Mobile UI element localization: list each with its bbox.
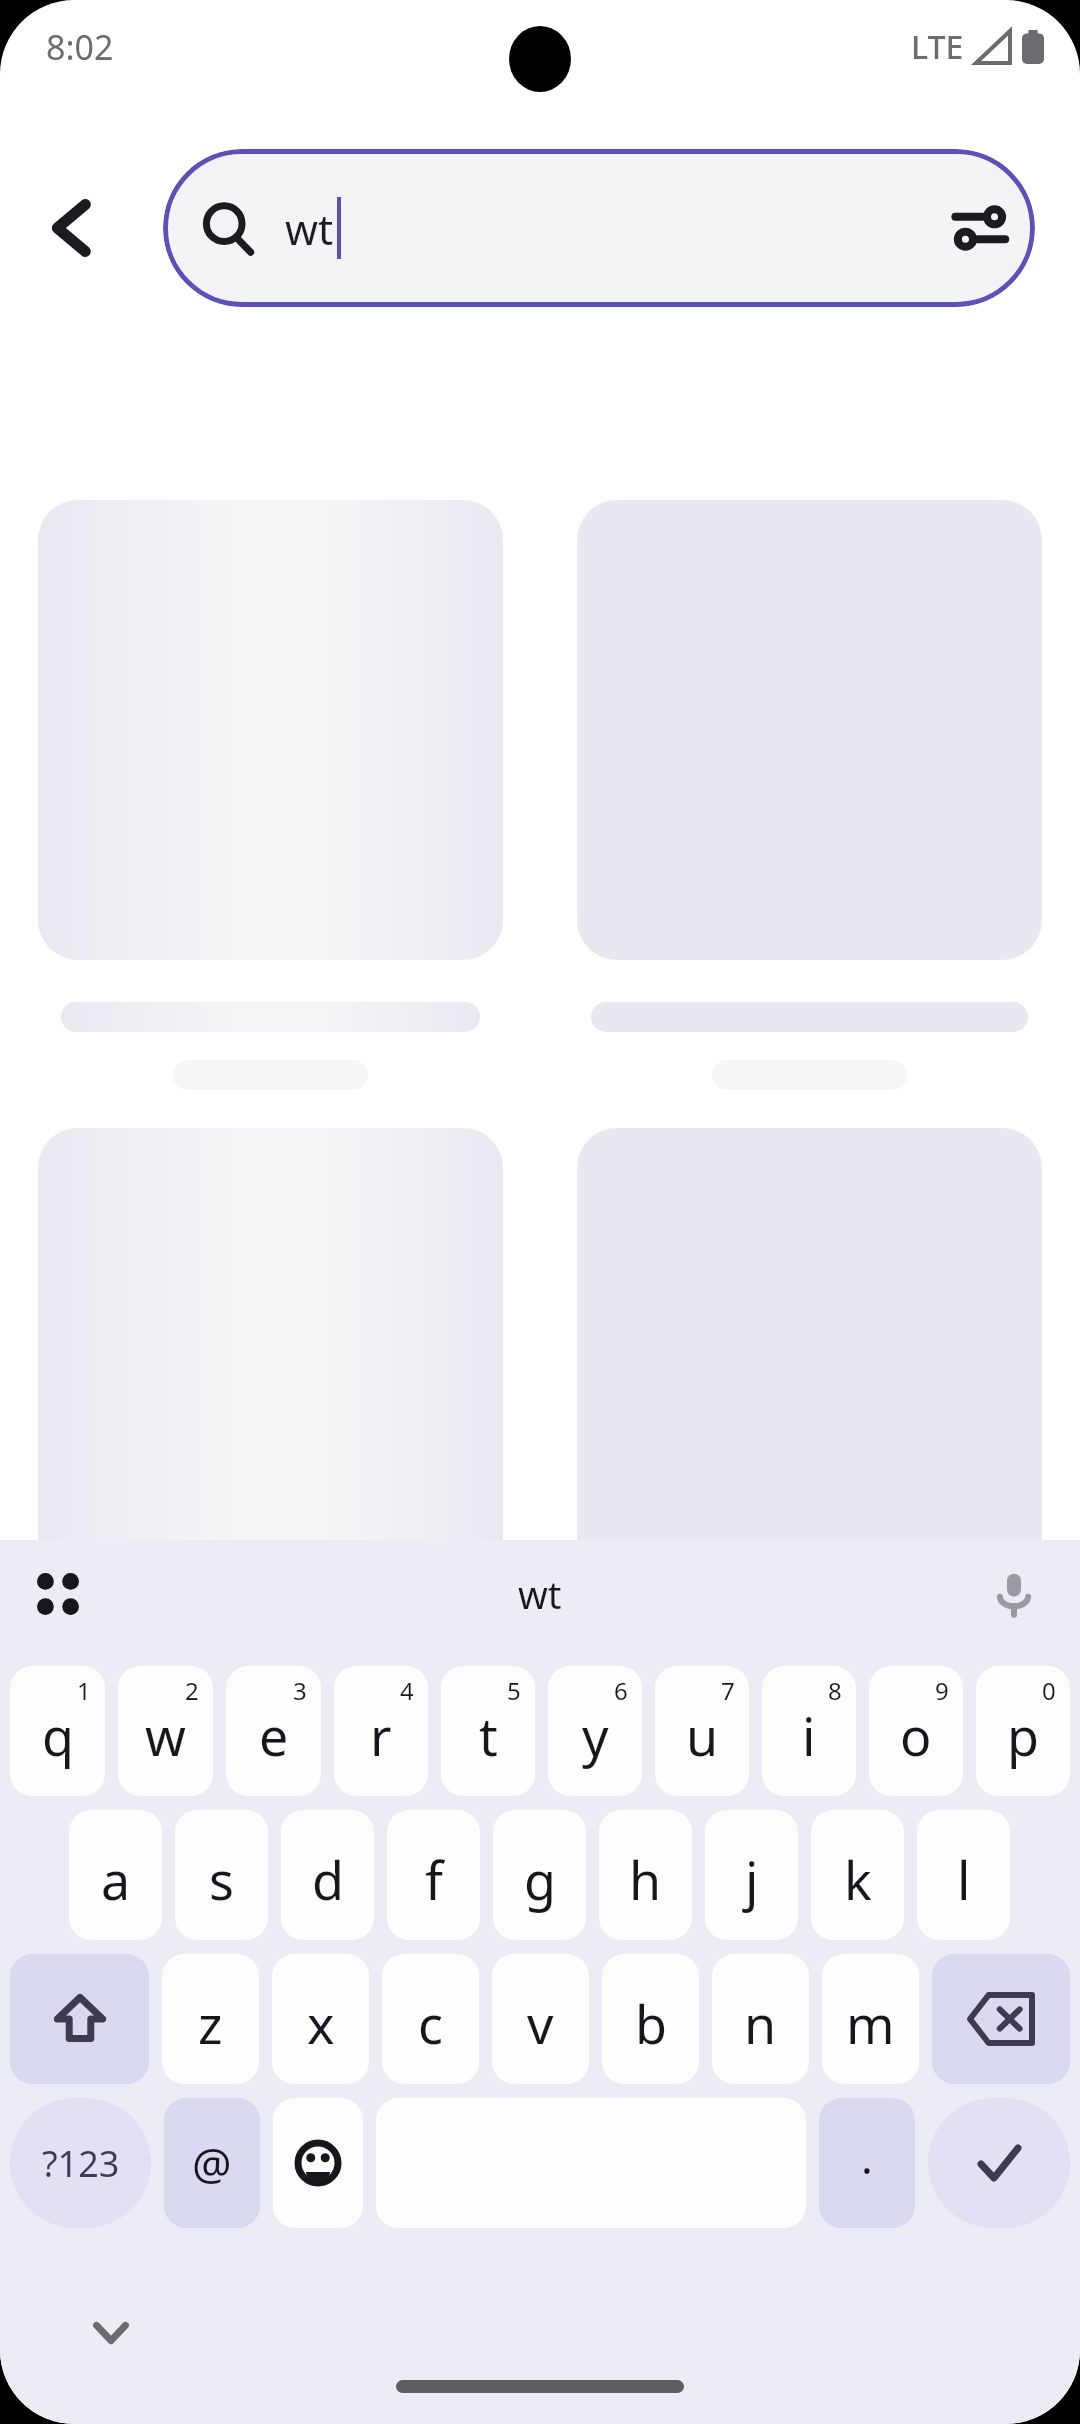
staticText: y bbox=[582, 1700, 609, 1771]
button[interactable]: wt bbox=[163, 149, 1035, 307]
staticText: ?123 bbox=[42, 2139, 120, 2188]
button[interactable]: f bbox=[387, 1810, 480, 1940]
button[interactable]: Voice input bbox=[974, 1554, 1054, 1634]
staticText: r bbox=[370, 1700, 392, 1771]
staticText: b bbox=[635, 1988, 667, 2059]
button[interactable]: h bbox=[599, 1810, 692, 1940]
button[interactable]: Filters bbox=[925, 173, 1035, 283]
button[interactable]: z bbox=[162, 1954, 259, 2084]
staticText: 0 bbox=[1042, 1674, 1056, 1707]
staticText: n bbox=[744, 1988, 777, 2059]
button[interactable]: Loading item bbox=[38, 500, 503, 960]
button[interactable]: l bbox=[917, 1810, 1010, 1940]
button[interactable]: q bbox=[10, 1666, 105, 1796]
button[interactable]: s bbox=[175, 1810, 268, 1940]
staticText: i bbox=[802, 1700, 816, 1771]
staticText: m bbox=[846, 1988, 895, 2059]
button[interactable]: d bbox=[281, 1810, 374, 1940]
button[interactable]: x bbox=[272, 1954, 369, 2084]
staticText: u bbox=[686, 1700, 719, 1771]
staticText: w bbox=[145, 1700, 186, 1771]
button[interactable]: b bbox=[602, 1954, 699, 2084]
button[interactable]: v bbox=[492, 1954, 589, 2084]
staticText: wt bbox=[518, 1568, 562, 1620]
button[interactable]: @ bbox=[164, 2098, 260, 2228]
staticText: g bbox=[524, 1844, 556, 1915]
staticText: 5 bbox=[507, 1674, 521, 1707]
staticText: 9 bbox=[935, 1674, 949, 1707]
button[interactable]: Search bbox=[928, 2098, 1070, 2228]
button[interactable]: r bbox=[334, 1666, 428, 1796]
staticText: 4 bbox=[400, 1674, 414, 1707]
staticText: k bbox=[844, 1844, 872, 1915]
button[interactable]: p bbox=[976, 1666, 1070, 1796]
button[interactable]: Backspace bbox=[932, 1954, 1070, 2084]
staticText: 8:02 bbox=[46, 24, 114, 70]
staticText: 6 bbox=[614, 1674, 628, 1707]
staticText: 3 bbox=[293, 1674, 307, 1707]
button[interactable]: m bbox=[822, 1954, 919, 2084]
staticText: v bbox=[527, 1988, 554, 2059]
staticText: 8 bbox=[828, 1674, 842, 1707]
staticText: f bbox=[425, 1844, 443, 1915]
staticText: s bbox=[209, 1844, 234, 1915]
staticText: z bbox=[198, 1988, 223, 2059]
button[interactable]: Keyboard menu bbox=[18, 1554, 98, 1634]
staticText: 7 bbox=[721, 1674, 735, 1707]
staticText: c bbox=[418, 1988, 443, 2059]
button[interactable]: u bbox=[655, 1666, 749, 1796]
button[interactable]: Hide keyboard bbox=[72, 2294, 150, 2372]
staticText: LTE bbox=[911, 25, 964, 69]
button[interactable]: i bbox=[762, 1666, 856, 1796]
button[interactable]: Emoji bbox=[273, 2098, 363, 2228]
button[interactable]: w bbox=[118, 1666, 213, 1796]
staticText: t bbox=[479, 1700, 498, 1771]
button[interactable]: c bbox=[382, 1954, 479, 2084]
button[interactable]: j bbox=[705, 1810, 798, 1940]
button[interactable]: k bbox=[811, 1810, 904, 1940]
staticText: h bbox=[629, 1844, 662, 1915]
button[interactable]: Shift bbox=[10, 1954, 149, 2084]
staticText: o bbox=[900, 1700, 932, 1771]
button[interactable]: e bbox=[226, 1666, 321, 1796]
button[interactable]: o bbox=[869, 1666, 963, 1796]
staticText: 2 bbox=[185, 1674, 199, 1707]
button[interactable]: t bbox=[441, 1666, 535, 1796]
staticText: e bbox=[259, 1700, 289, 1771]
button[interactable]: . bbox=[819, 2098, 915, 2228]
staticText: j bbox=[745, 1844, 759, 1915]
button[interactable]: ?123 bbox=[10, 2098, 151, 2228]
button[interactable]: y bbox=[548, 1666, 642, 1796]
staticText: l bbox=[957, 1844, 971, 1915]
staticText: q bbox=[42, 1700, 74, 1771]
staticText: 1 bbox=[77, 1674, 91, 1707]
button[interactable]: Loading item bbox=[38, 1128, 503, 1588]
staticText: @ bbox=[192, 2133, 232, 2193]
button[interactable]: n bbox=[712, 1954, 809, 2084]
staticText: d bbox=[312, 1844, 344, 1915]
staticText: p bbox=[1007, 1700, 1039, 1771]
staticText: a bbox=[101, 1844, 131, 1915]
button[interactable]: a bbox=[69, 1810, 162, 1940]
staticText: x bbox=[307, 1988, 335, 2059]
button[interactable]: Back bbox=[14, 169, 132, 287]
staticText: wt bbox=[285, 200, 334, 257]
button[interactable]: g bbox=[493, 1810, 586, 1940]
staticText: . bbox=[861, 2127, 873, 2187]
